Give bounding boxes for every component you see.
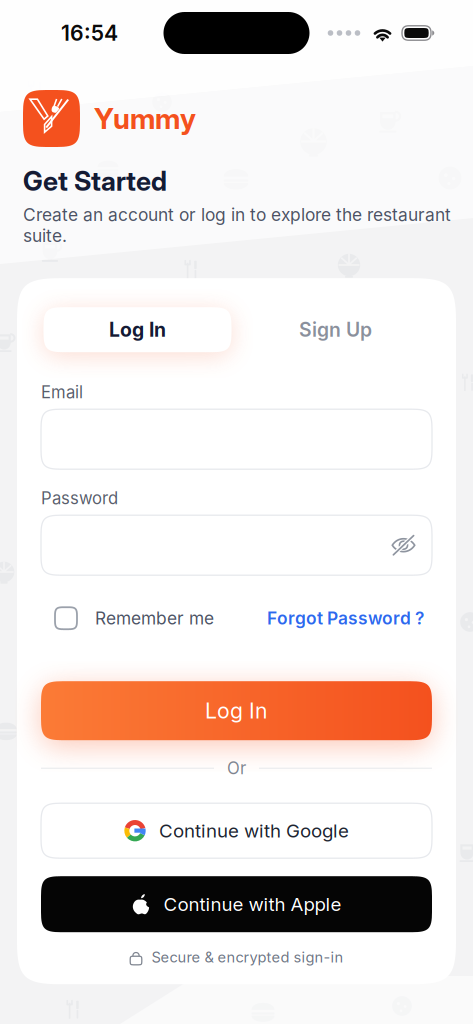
staticText: Remember me (95, 608, 214, 629)
button[interactable]: Continue with Google (41, 803, 432, 858)
staticText: 16:54 (61, 20, 118, 46)
staticText: Get Started (23, 165, 167, 197)
staticText: Secure & encrypted sign-in (151, 948, 343, 966)
staticText: Email (41, 382, 83, 402)
button[interactable]: Log In (43, 307, 231, 352)
staticText: Log In (109, 318, 166, 341)
staticText: Sign Up (299, 318, 372, 341)
button[interactable]: Sign Up (241, 307, 429, 352)
button[interactable]: Log In (41, 681, 432, 740)
staticText: Log In (205, 698, 268, 724)
staticText: Password (41, 488, 118, 508)
staticText: Create an account or log in to explore t… (23, 204, 451, 246)
staticText: Or (227, 758, 246, 778)
button[interactable]: Continue with Apple (41, 876, 432, 932)
staticText: Yummy (94, 101, 196, 136)
button[interactable]: Forgot Password ? (267, 608, 424, 629)
staticText: Continue with Apple (163, 893, 341, 915)
staticText: Forgot Password ? (267, 608, 424, 629)
button[interactable]: Remember me (55, 607, 214, 629)
staticText: Continue with Google (159, 819, 349, 842)
